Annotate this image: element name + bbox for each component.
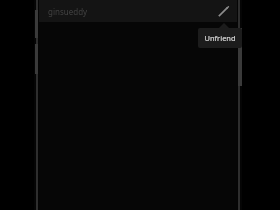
staticText: ginsueddy (48, 6, 88, 17)
button[interactable]: Unfriend (198, 28, 242, 48)
button[interactable]: Edit (214, 2, 232, 20)
staticText: Unfriend (204, 33, 236, 43)
